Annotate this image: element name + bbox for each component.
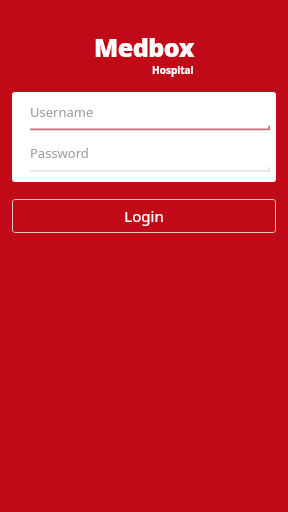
staticText: Password	[30, 144, 89, 162]
staticText: Username	[30, 103, 94, 121]
button[interactable]: Login	[12, 199, 276, 233]
staticText: Hospital	[152, 63, 194, 77]
button[interactable]: Username	[30, 101, 270, 131]
button[interactable]: Password	[30, 142, 270, 172]
staticText: Medbox	[94, 30, 194, 64]
staticText: Login	[124, 206, 164, 226]
